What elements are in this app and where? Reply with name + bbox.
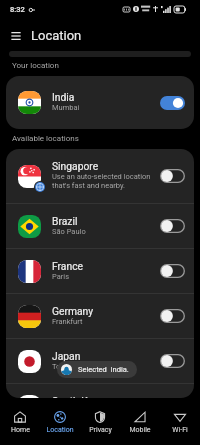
- staticText: Privacy: [89, 426, 112, 434]
- staticText: Wi-Fi: [172, 426, 188, 434]
- staticText: Germany: [52, 305, 94, 317]
- button[interactable]: Open navigation menu: [5, 25, 26, 46]
- staticText: 8:32: [10, 5, 25, 14]
- button[interactable]: Location: [40, 400, 80, 445]
- staticText: Tokyo: [52, 362, 72, 371]
- button[interactable]: Turn off: [160, 96, 185, 110]
- staticText: Available locations: [12, 134, 79, 143]
- staticText: São Paulo: [52, 227, 86, 236]
- staticText: Frankfurt: [52, 317, 83, 326]
- staticText: Japan: [52, 350, 81, 362]
- button[interactable]: Turn on: [160, 169, 185, 183]
- button[interactable]: Turn on: [160, 264, 185, 278]
- staticText: Location: [31, 28, 82, 43]
- staticText: Brazil: [52, 215, 78, 227]
- button[interactable]: Selected India.: [57, 361, 137, 378]
- button[interactable]: Home: [0, 400, 40, 445]
- button[interactable]: Japan: [6, 339, 194, 383]
- button[interactable]: Privacy: [80, 400, 120, 445]
- button[interactable]: Brazil: [6, 204, 194, 248]
- staticText: Home: [11, 426, 30, 434]
- staticText: Selected India.: [78, 365, 129, 374]
- staticText: Location: [46, 426, 74, 434]
- staticText: that's fast and nearby.: [52, 181, 126, 190]
- staticText: Mobile: [129, 426, 151, 434]
- staticText: Use an auto-selected location: [52, 172, 151, 181]
- button[interactable]: India: [6, 76, 194, 129]
- button[interactable]: South Korea: [6, 384, 194, 398]
- button[interactable]: Turn on: [160, 219, 185, 233]
- staticText: South Korea: [52, 395, 108, 398]
- staticText: Singapore: [52, 160, 99, 172]
- staticText: Your location: [12, 61, 59, 70]
- button[interactable]: Wi-Fi: [160, 400, 200, 445]
- staticText: Mumbai: [52, 103, 80, 112]
- button[interactable]: France: [6, 249, 194, 293]
- button[interactable]: Turn on: [160, 309, 185, 323]
- button[interactable]: Mobile: [120, 400, 160, 445]
- staticText: India: [52, 91, 75, 103]
- button[interactable]: Germany: [6, 294, 194, 338]
- button[interactable]: Singapore: [6, 149, 194, 203]
- staticText: France: [52, 260, 83, 272]
- staticText: Paris: [52, 272, 70, 281]
- button[interactable]: Turn on: [160, 354, 185, 368]
